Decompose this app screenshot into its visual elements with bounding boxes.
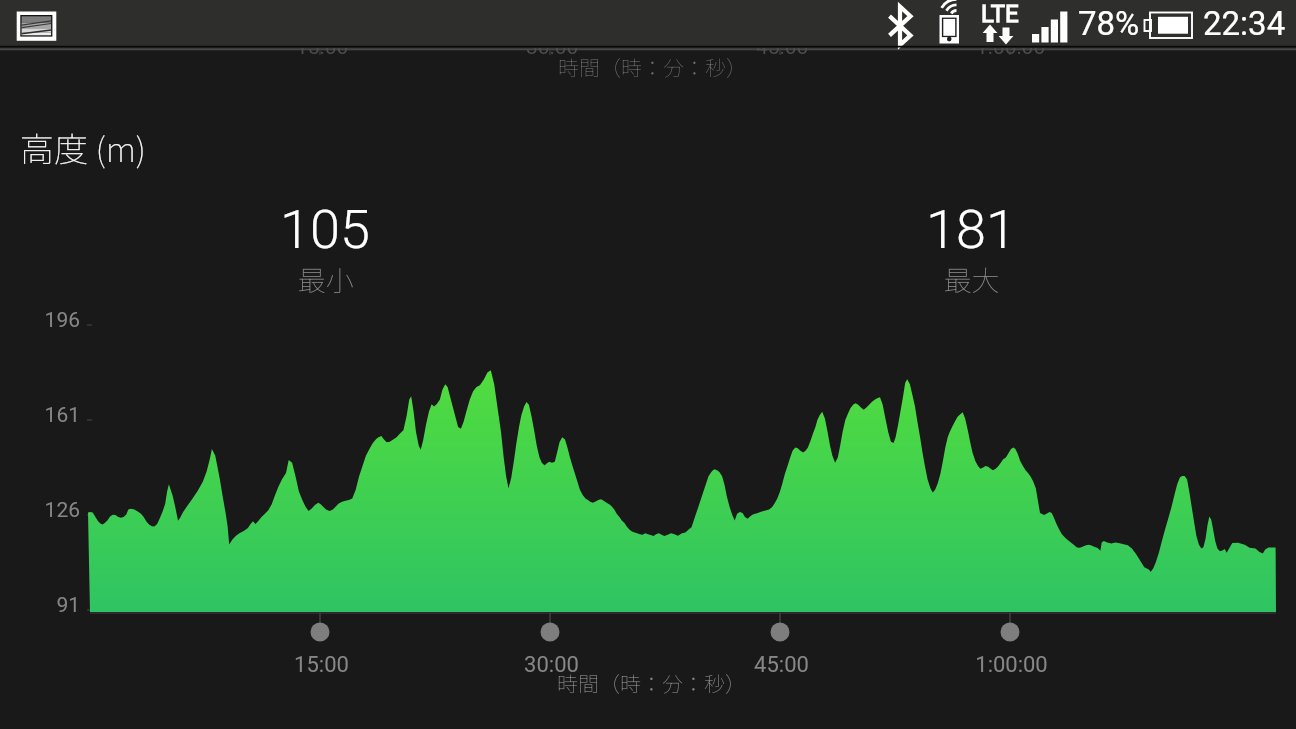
staticText: 最小: [297, 259, 354, 300]
staticText: 126: [44, 498, 80, 523]
staticText: 15:00: [296, 35, 349, 60]
button[interactable]: 45:00: [681, 652, 881, 678]
staticText: 181: [926, 198, 1016, 261]
button[interactable]: LTE mobile data: [975, 0, 1020, 45]
button[interactable]: Elevation chart: [0, 0, 1296, 729]
staticText: 45:00: [756, 35, 809, 60]
button[interactable]: 15:00: [221, 652, 421, 678]
button[interactable]: 1:00:00: [911, 652, 1111, 678]
staticText: 15:00: [294, 652, 349, 678]
button[interactable]: 30:00: [451, 652, 651, 678]
staticText: 161: [44, 403, 80, 428]
button[interactable]: Status bar: [0, 0, 1296, 48]
button[interactable]: Tethering active: [930, 0, 970, 45]
button[interactable]: Bluetooth on: [884, 0, 916, 45]
staticText: 105: [280, 198, 370, 261]
staticText: LTE: [981, 0, 1019, 28]
staticText: 最大: [943, 259, 1000, 300]
staticText: 78%: [1078, 4, 1140, 43]
staticText: 30:00: [524, 652, 579, 678]
staticText: 1:00:00: [976, 35, 1046, 60]
button[interactable]: 105: [225, 198, 425, 302]
staticText: 30:00: [526, 35, 579, 60]
staticText: 時間（時：分：秒）: [557, 668, 746, 698]
staticText: 196: [44, 308, 80, 333]
staticText: 時間（時：分：秒）: [558, 52, 747, 82]
staticText: 高度 (m): [20, 123, 147, 172]
button[interactable]: Mobile signal strength: [1028, 0, 1072, 45]
staticText: 1:00:00: [975, 652, 1048, 678]
button[interactable]: 181: [871, 198, 1071, 302]
staticText: 91: [56, 593, 80, 618]
button[interactable]: Battery 78 percent: [1142, 0, 1198, 45]
staticText: 45:00: [754, 652, 809, 678]
button[interactable]: Screenshot saved notification: [14, 0, 60, 45]
staticText: 22:34: [1203, 4, 1286, 43]
